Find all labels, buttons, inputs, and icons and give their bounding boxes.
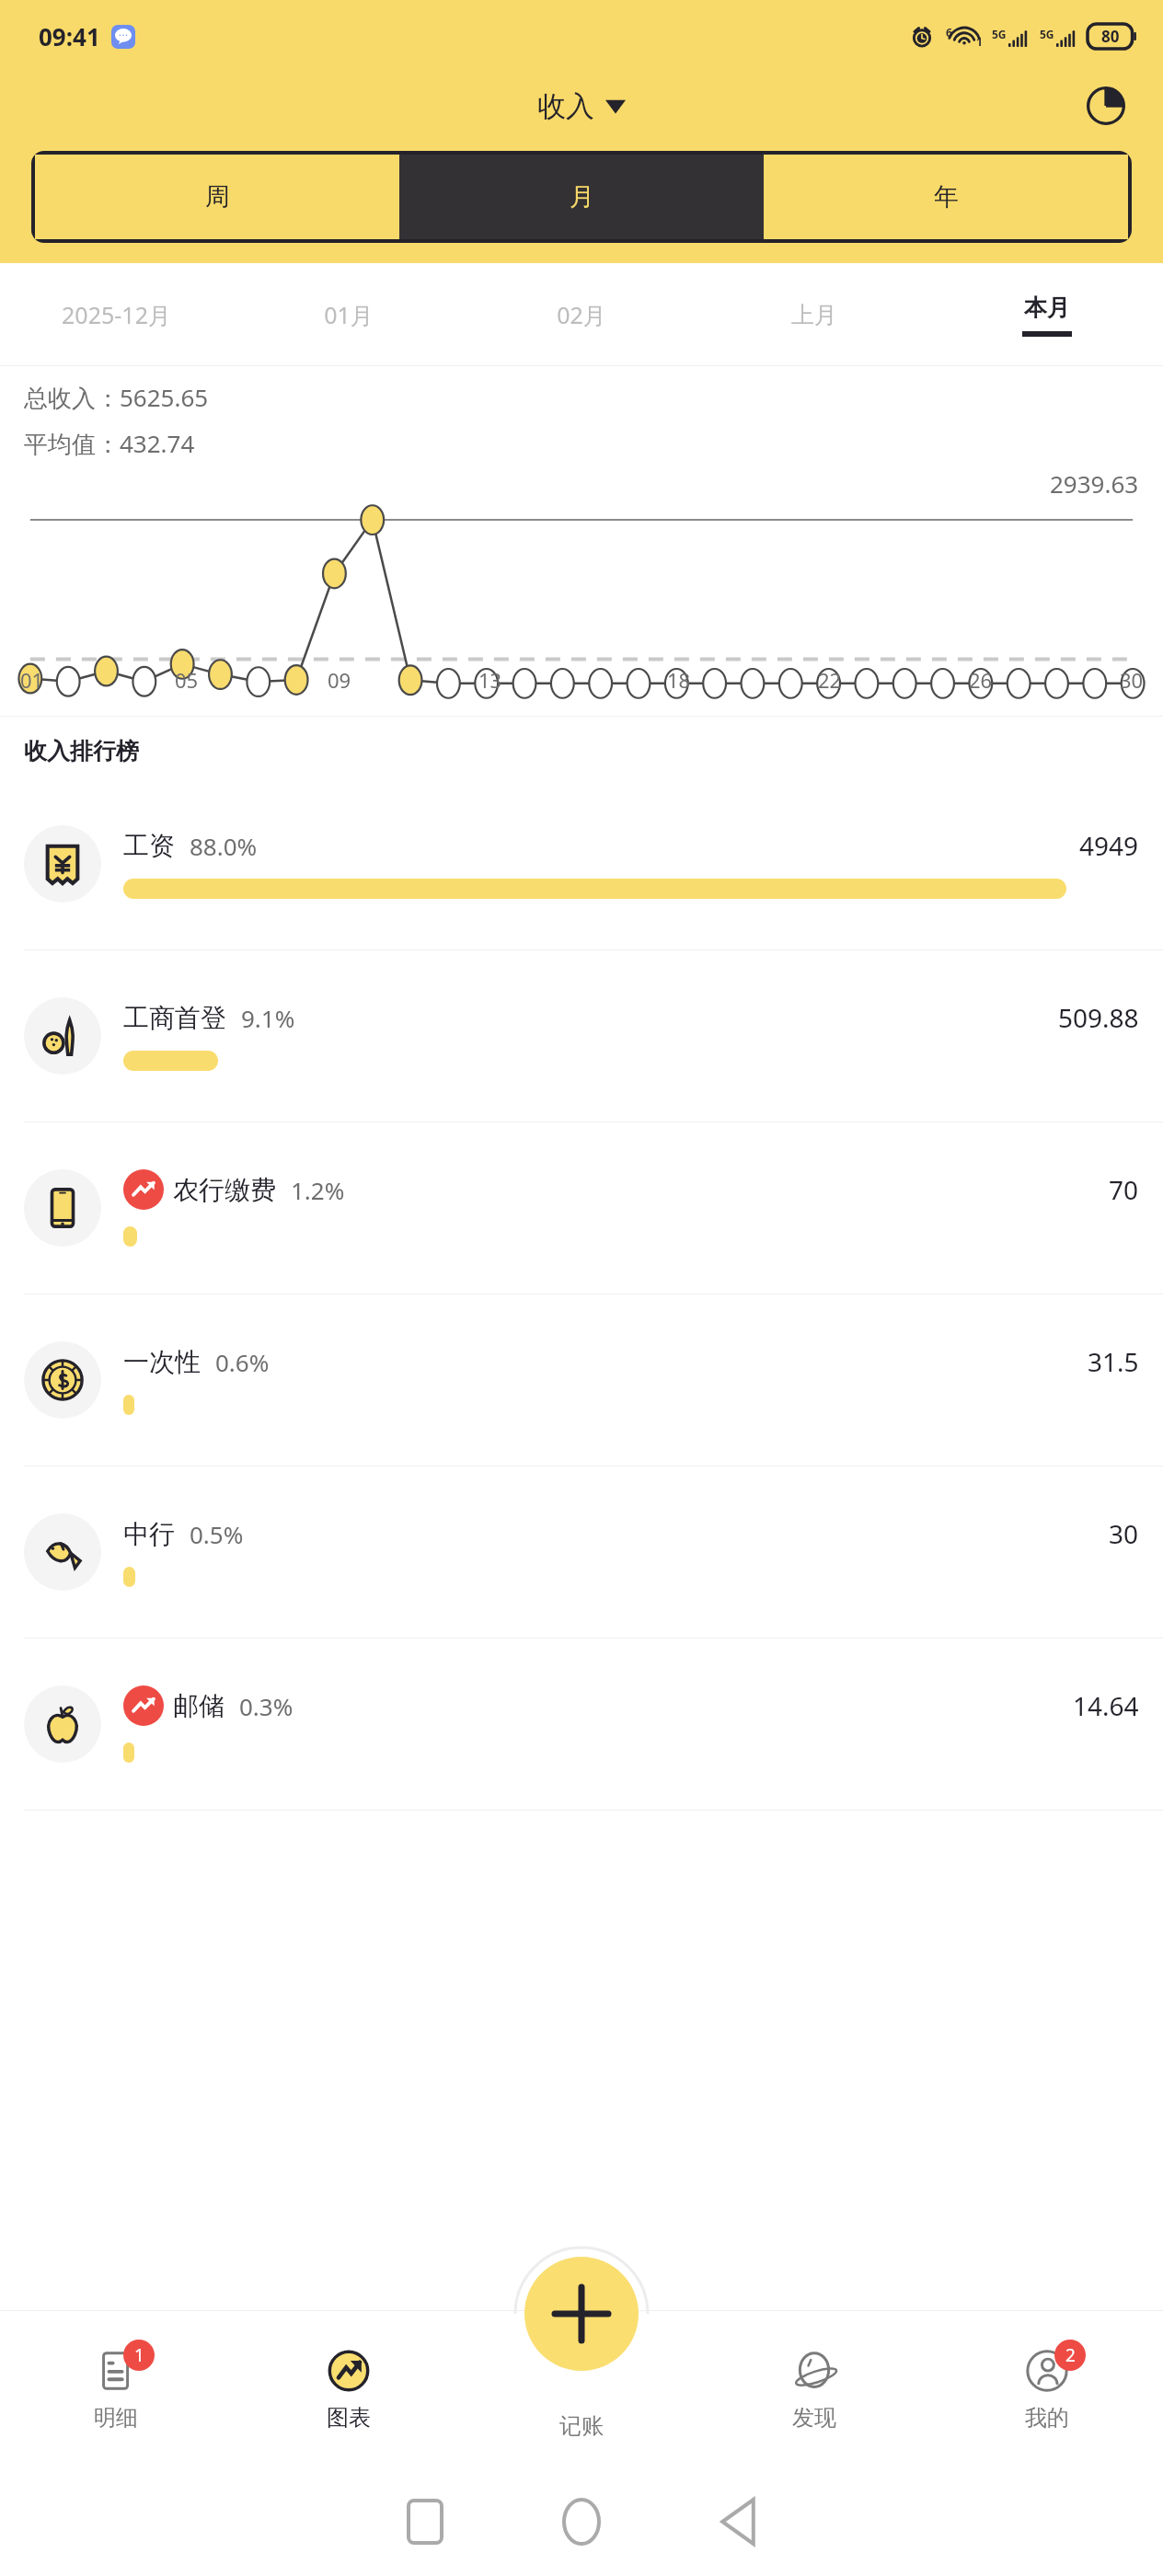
- button[interactable]: 01月: [232, 263, 465, 366]
- button[interactable]: 上月: [697, 263, 930, 366]
- button[interactable]: 工商首登: [0, 950, 1163, 1122]
- staticText: 邮储: [173, 1690, 225, 1722]
- staticText: 22: [818, 666, 842, 694]
- staticText: 18: [667, 666, 691, 694]
- button[interactable]: 记账: [465, 2311, 697, 2467]
- button[interactable]: 一次性: [0, 1294, 1163, 1466]
- staticText: 周: [205, 181, 230, 213]
- button[interactable]: Pie chart: [1082, 82, 1130, 130]
- button[interactable]: 农行缴费: [0, 1122, 1163, 1294]
- staticText: 记账: [559, 2412, 604, 2440]
- staticText: 26: [969, 666, 993, 694]
- staticText: 88.0%: [190, 830, 258, 862]
- button[interactable]: Recents: [397, 2494, 453, 2549]
- staticText: 发现: [792, 2404, 836, 2432]
- button[interactable]: 1: [0, 2311, 232, 2467]
- staticText: 2939.63: [1050, 467, 1139, 500]
- staticText: 80: [1101, 26, 1120, 47]
- staticText: 收入排行榜: [24, 737, 139, 765]
- staticText: 6: [946, 25, 952, 40]
- staticText: 月: [570, 181, 594, 213]
- staticText: 1: [134, 2343, 144, 2367]
- staticText: 平均值：432.74: [24, 427, 195, 460]
- staticText: 0.5%: [190, 1518, 244, 1550]
- staticText: 13: [478, 666, 502, 694]
- staticText: 我的: [1025, 2404, 1069, 2432]
- staticText: 14.64: [1073, 1688, 1139, 1723]
- button[interactable]: 02月: [465, 263, 697, 366]
- staticText: 4949: [1079, 828, 1139, 863]
- staticText: 2025-12月: [62, 299, 171, 330]
- button[interactable]: 邮储: [0, 1639, 1163, 1811]
- button[interactable]: Back: [710, 2494, 766, 2549]
- staticText: 0.3%: [239, 1690, 294, 1722]
- button[interactable]: 中行: [0, 1466, 1163, 1639]
- staticText: 5G: [992, 27, 1007, 41]
- button[interactable]: 周: [35, 155, 399, 239]
- button[interactable]: 月: [399, 155, 764, 239]
- staticText: 5G: [1040, 27, 1054, 41]
- staticText: 01月: [324, 299, 374, 330]
- staticText: 70: [1109, 1172, 1139, 1207]
- button[interactable]: Home: [554, 2494, 609, 2549]
- staticText: 30: [1109, 1516, 1139, 1551]
- staticText: 收入: [537, 88, 594, 124]
- staticText: 明细: [94, 2404, 138, 2432]
- staticText: 总收入：5625.65: [24, 381, 209, 414]
- staticText: 31.5: [1088, 1344, 1139, 1379]
- staticText: 02月: [557, 299, 606, 330]
- button[interactable]: 本月: [930, 263, 1163, 366]
- staticText: 工商首登: [123, 1002, 226, 1034]
- staticText: 1: [976, 34, 983, 49]
- button[interactable]: 收入: [528, 83, 635, 130]
- button[interactable]: 图表: [232, 2311, 465, 2467]
- button[interactable]: Add record: [524, 2257, 639, 2371]
- staticText: 中行: [123, 1518, 175, 1550]
- button[interactable]: 发现: [697, 2311, 930, 2467]
- staticText: 30: [1120, 666, 1144, 694]
- staticText: 1.2%: [291, 1174, 345, 1206]
- staticText: 509.88: [1058, 1000, 1139, 1035]
- staticText: 上月: [791, 301, 837, 329]
- button[interactable]: 年: [764, 155, 1128, 239]
- staticText: 图表: [327, 2404, 371, 2432]
- button[interactable]: 2: [930, 2311, 1163, 2467]
- staticText: 0.6%: [215, 1346, 270, 1378]
- staticText: 09: [328, 666, 351, 694]
- staticText: 2: [1065, 2343, 1076, 2367]
- staticText: 05: [175, 666, 199, 694]
- button[interactable]: 工资: [0, 778, 1163, 950]
- staticText: 01: [20, 666, 44, 694]
- staticText: 年: [934, 181, 959, 213]
- staticText: 工资: [123, 830, 175, 862]
- button[interactable]: 2025-12月: [0, 263, 232, 366]
- staticText: 一次性: [123, 1346, 201, 1378]
- staticText: 本月: [1024, 293, 1070, 322]
- staticText: 09:41: [39, 20, 100, 52]
- staticText: 农行缴费: [173, 1174, 276, 1206]
- staticText: 9.1%: [241, 1002, 295, 1034]
